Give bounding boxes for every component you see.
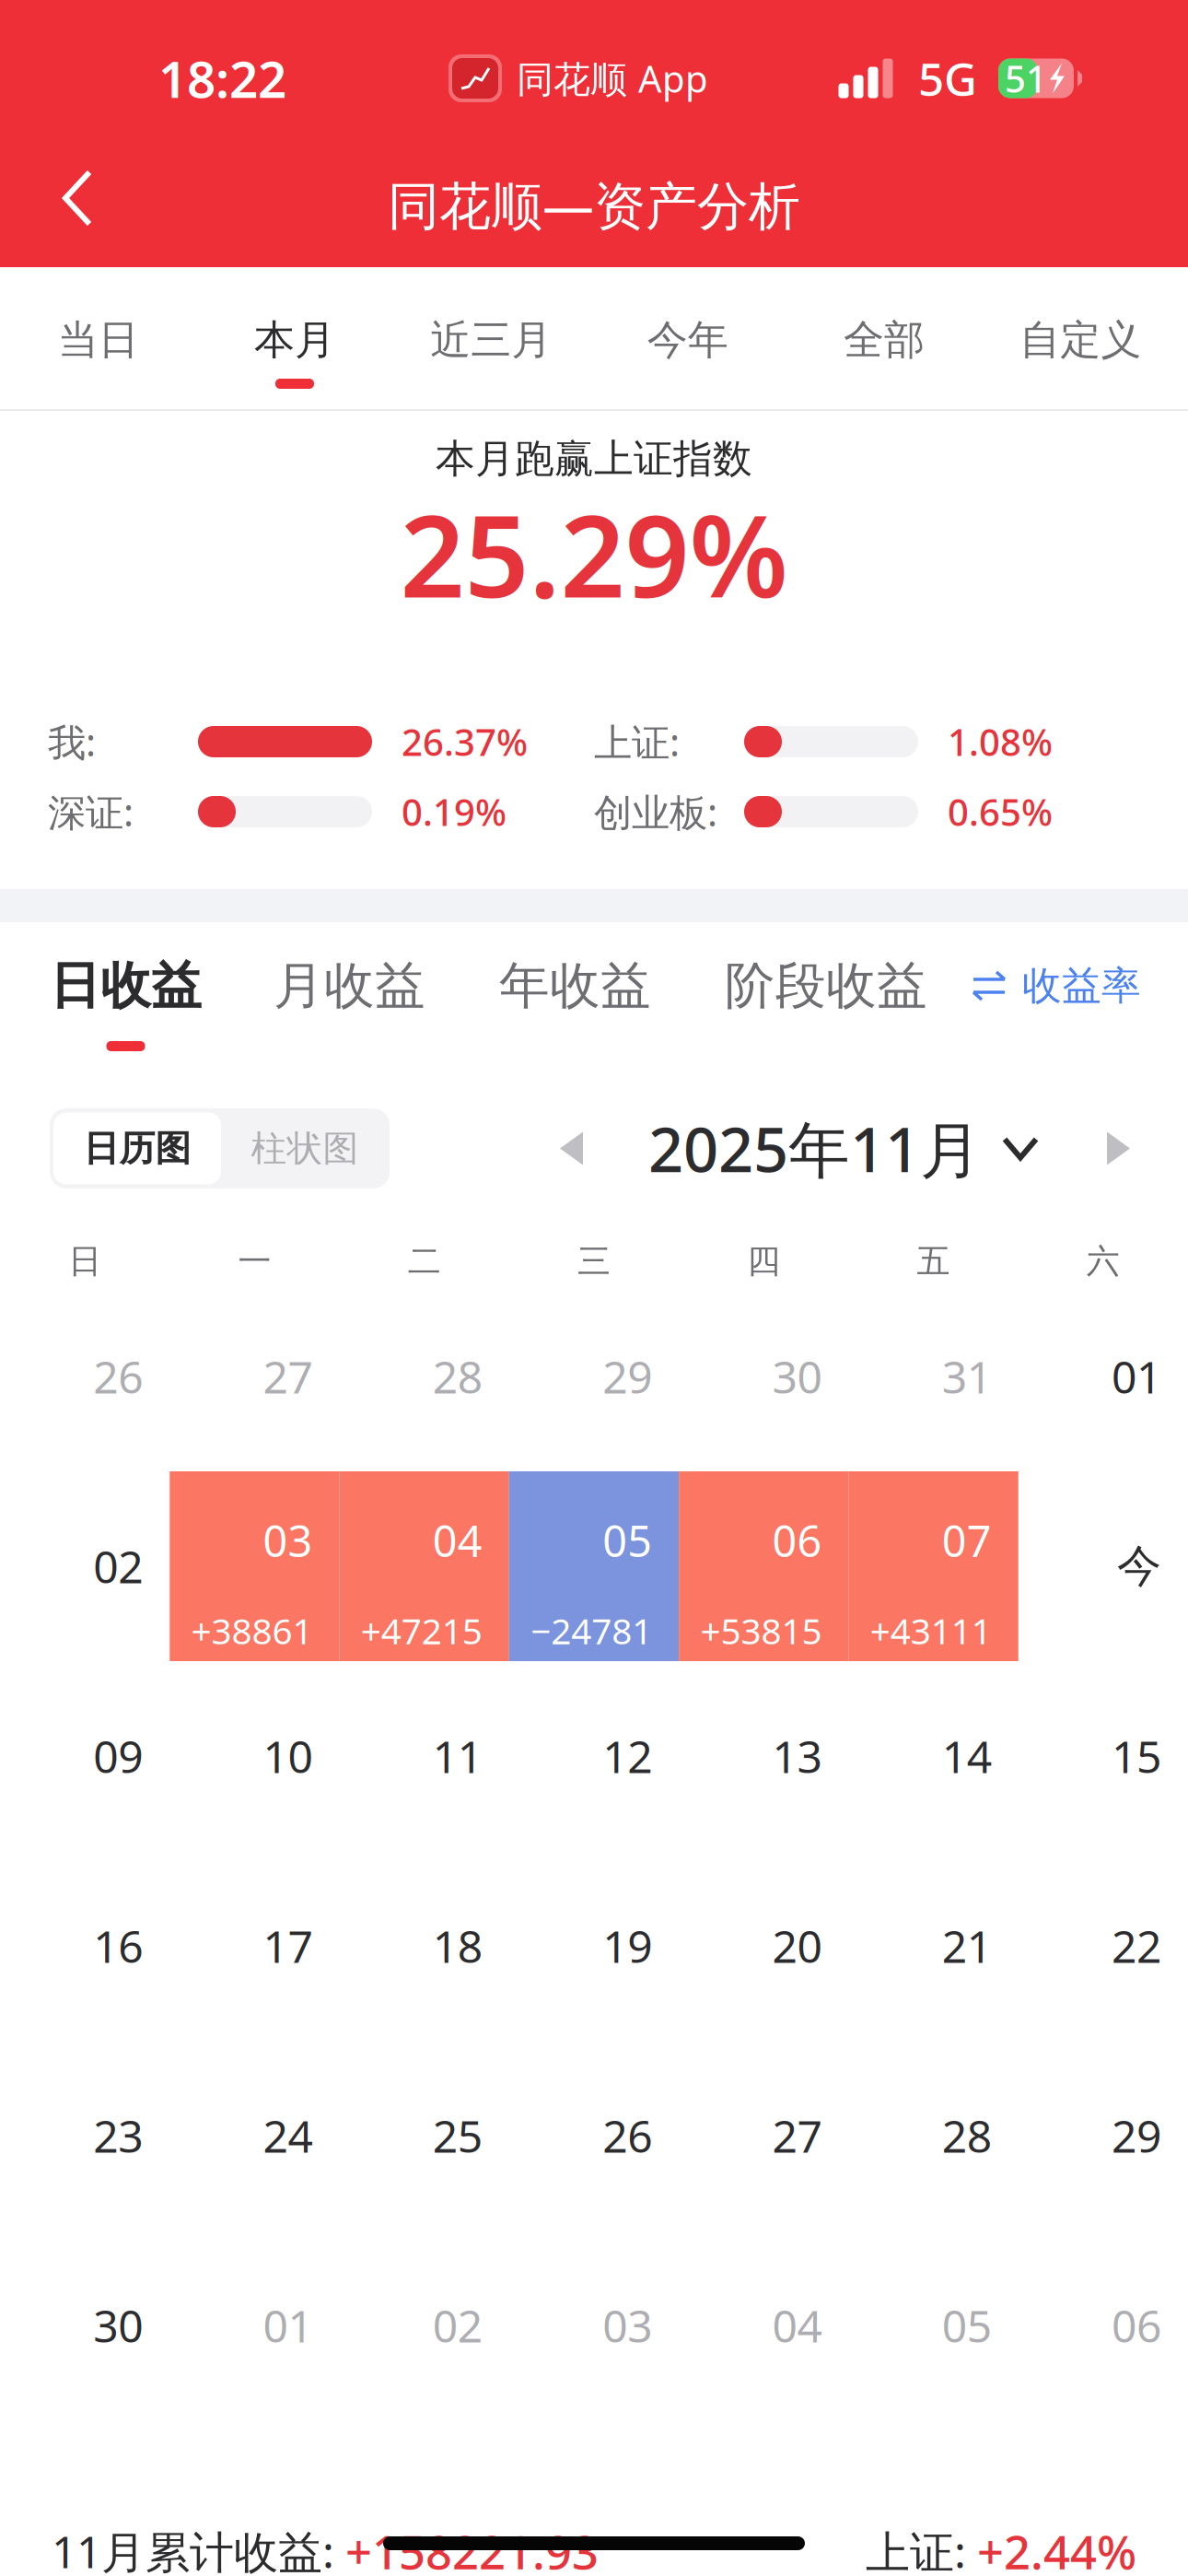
button[interactable]: 本月 bbox=[196, 320, 393, 389]
staticText: 27 bbox=[772, 2106, 822, 2165]
staticText: 同花顺—资产分析 bbox=[388, 170, 800, 239]
staticText: 07 bbox=[942, 1512, 992, 1569]
button[interactable]: 全部 bbox=[786, 320, 982, 389]
staticText: 上证: bbox=[866, 2522, 977, 2576]
staticText: 20 bbox=[772, 1916, 822, 1975]
staticText: 日收益 bbox=[50, 955, 202, 1017]
staticText: 5G bbox=[918, 48, 977, 108]
staticText: 柱状图 bbox=[251, 1127, 359, 1170]
staticText: 六 bbox=[1087, 1241, 1120, 1282]
staticText: 14 bbox=[942, 1727, 992, 1785]
staticText: 30 bbox=[772, 1347, 822, 1406]
staticText: 19 bbox=[602, 1916, 652, 1975]
staticText: 02 bbox=[433, 2296, 482, 2355]
staticText: 16 bbox=[93, 1916, 143, 1975]
staticText: 13 bbox=[772, 1727, 822, 1785]
staticText: 四 bbox=[747, 1241, 780, 1282]
staticText: 上证: bbox=[594, 716, 680, 767]
button[interactable]: 日收益 bbox=[50, 960, 202, 1051]
staticText: 日历图 bbox=[83, 1127, 191, 1170]
staticText: 阶段收益 bbox=[725, 955, 927, 1017]
staticText: 一 bbox=[238, 1241, 271, 1282]
staticText: 01 bbox=[1112, 1347, 1161, 1406]
staticText: 30 bbox=[93, 2296, 143, 2355]
button[interactable]: 2025年11月 bbox=[648, 1108, 1039, 1188]
button[interactable]: 近三月 bbox=[393, 320, 589, 389]
staticText: 0.19% bbox=[402, 787, 507, 836]
staticText: 我: bbox=[48, 716, 96, 767]
staticText: 18 bbox=[433, 1916, 482, 1975]
staticText: 05 bbox=[602, 1512, 652, 1569]
staticText: 12 bbox=[602, 1727, 652, 1785]
staticText: 17 bbox=[263, 1916, 313, 1975]
staticText: 当日 bbox=[58, 315, 139, 365]
staticText: 23 bbox=[93, 2106, 143, 2165]
staticText: 五 bbox=[917, 1241, 950, 1282]
button[interactable]: Back bbox=[0, 118, 155, 278]
staticText: 26 bbox=[602, 2106, 652, 2165]
button[interactable]: 年收益 bbox=[499, 960, 651, 1051]
staticText: +43111 bbox=[870, 1607, 992, 1654]
staticText: 24 bbox=[263, 2106, 313, 2165]
staticText: +158221.93 bbox=[345, 2520, 599, 2576]
button[interactable]: 自定义 bbox=[982, 320, 1179, 389]
staticText: 今年 bbox=[647, 315, 728, 365]
button[interactable]: 柱状图 bbox=[221, 1112, 389, 1184]
staticText: 26.37% bbox=[402, 717, 528, 766]
button[interactable]: 月收益 bbox=[274, 960, 425, 1051]
staticText: 06 bbox=[1112, 2296, 1161, 2355]
staticText: 25.29% bbox=[400, 479, 788, 629]
staticText: 21 bbox=[942, 1916, 992, 1975]
staticText: 09 bbox=[93, 1727, 143, 1785]
button[interactable]: 收益率 bbox=[972, 960, 1188, 1012]
button[interactable]: 今年 bbox=[589, 320, 786, 389]
staticText: 29 bbox=[602, 1347, 652, 1406]
staticText: 25 bbox=[433, 2106, 482, 2165]
staticText: 年收益 bbox=[499, 955, 651, 1017]
staticText: 29 bbox=[1112, 2106, 1161, 2165]
staticText: 深证: bbox=[48, 786, 134, 837]
staticText: 二 bbox=[408, 1241, 441, 1282]
staticText: 三 bbox=[577, 1241, 611, 1282]
staticText: 创业板: bbox=[594, 786, 717, 837]
staticText: −24781 bbox=[531, 1607, 652, 1654]
staticText: 11 bbox=[433, 1727, 482, 1785]
button[interactable]: 阶段收益 bbox=[725, 960, 927, 1051]
staticText: +2.44% bbox=[977, 2520, 1136, 2576]
staticText: 27 bbox=[263, 1347, 313, 1406]
staticText: 28 bbox=[942, 2106, 992, 2165]
staticText: 近三月 bbox=[430, 315, 552, 365]
button[interactable]: 当日 bbox=[0, 320, 196, 389]
staticText: 1.08% bbox=[948, 717, 1053, 766]
staticText: +53815 bbox=[700, 1607, 822, 1654]
staticText: 2025年11月 bbox=[648, 1108, 982, 1189]
staticText: 同花顺 App bbox=[517, 54, 708, 103]
button[interactable]: Previous month bbox=[543, 1108, 599, 1188]
button[interactable]: Next month bbox=[1090, 1108, 1146, 1188]
staticText: 04 bbox=[772, 2296, 822, 2355]
staticText: 15 bbox=[1112, 1727, 1161, 1785]
staticText: 22 bbox=[1112, 1916, 1161, 1975]
staticText: 自定义 bbox=[1020, 315, 1141, 365]
staticText: 31 bbox=[942, 1347, 992, 1406]
staticText: 本月跑赢上证指数 bbox=[436, 435, 752, 483]
staticText: 11月累计收益: bbox=[52, 2522, 345, 2576]
staticText: 月收益 bbox=[274, 955, 425, 1017]
staticText: 03 bbox=[602, 2296, 652, 2355]
staticText: 06 bbox=[772, 1512, 822, 1569]
staticText: 10 bbox=[263, 1727, 313, 1785]
staticText: 26 bbox=[93, 1347, 143, 1406]
staticText: 05 bbox=[942, 2296, 992, 2355]
button[interactable]: 日历图 bbox=[53, 1112, 221, 1184]
staticText: 02 bbox=[93, 1537, 143, 1596]
staticText: 18:22 bbox=[158, 45, 286, 112]
staticText: 日 bbox=[68, 1241, 101, 1282]
staticText: +38861 bbox=[191, 1607, 313, 1654]
staticText: 本月 bbox=[254, 315, 335, 365]
staticText: 28 bbox=[433, 1347, 482, 1406]
staticText: 04 bbox=[433, 1512, 482, 1569]
staticText: +47215 bbox=[361, 1607, 482, 1654]
staticText: 03 bbox=[263, 1512, 313, 1569]
staticText: 全部 bbox=[844, 315, 925, 365]
staticText: 收益率 bbox=[1022, 962, 1141, 1010]
